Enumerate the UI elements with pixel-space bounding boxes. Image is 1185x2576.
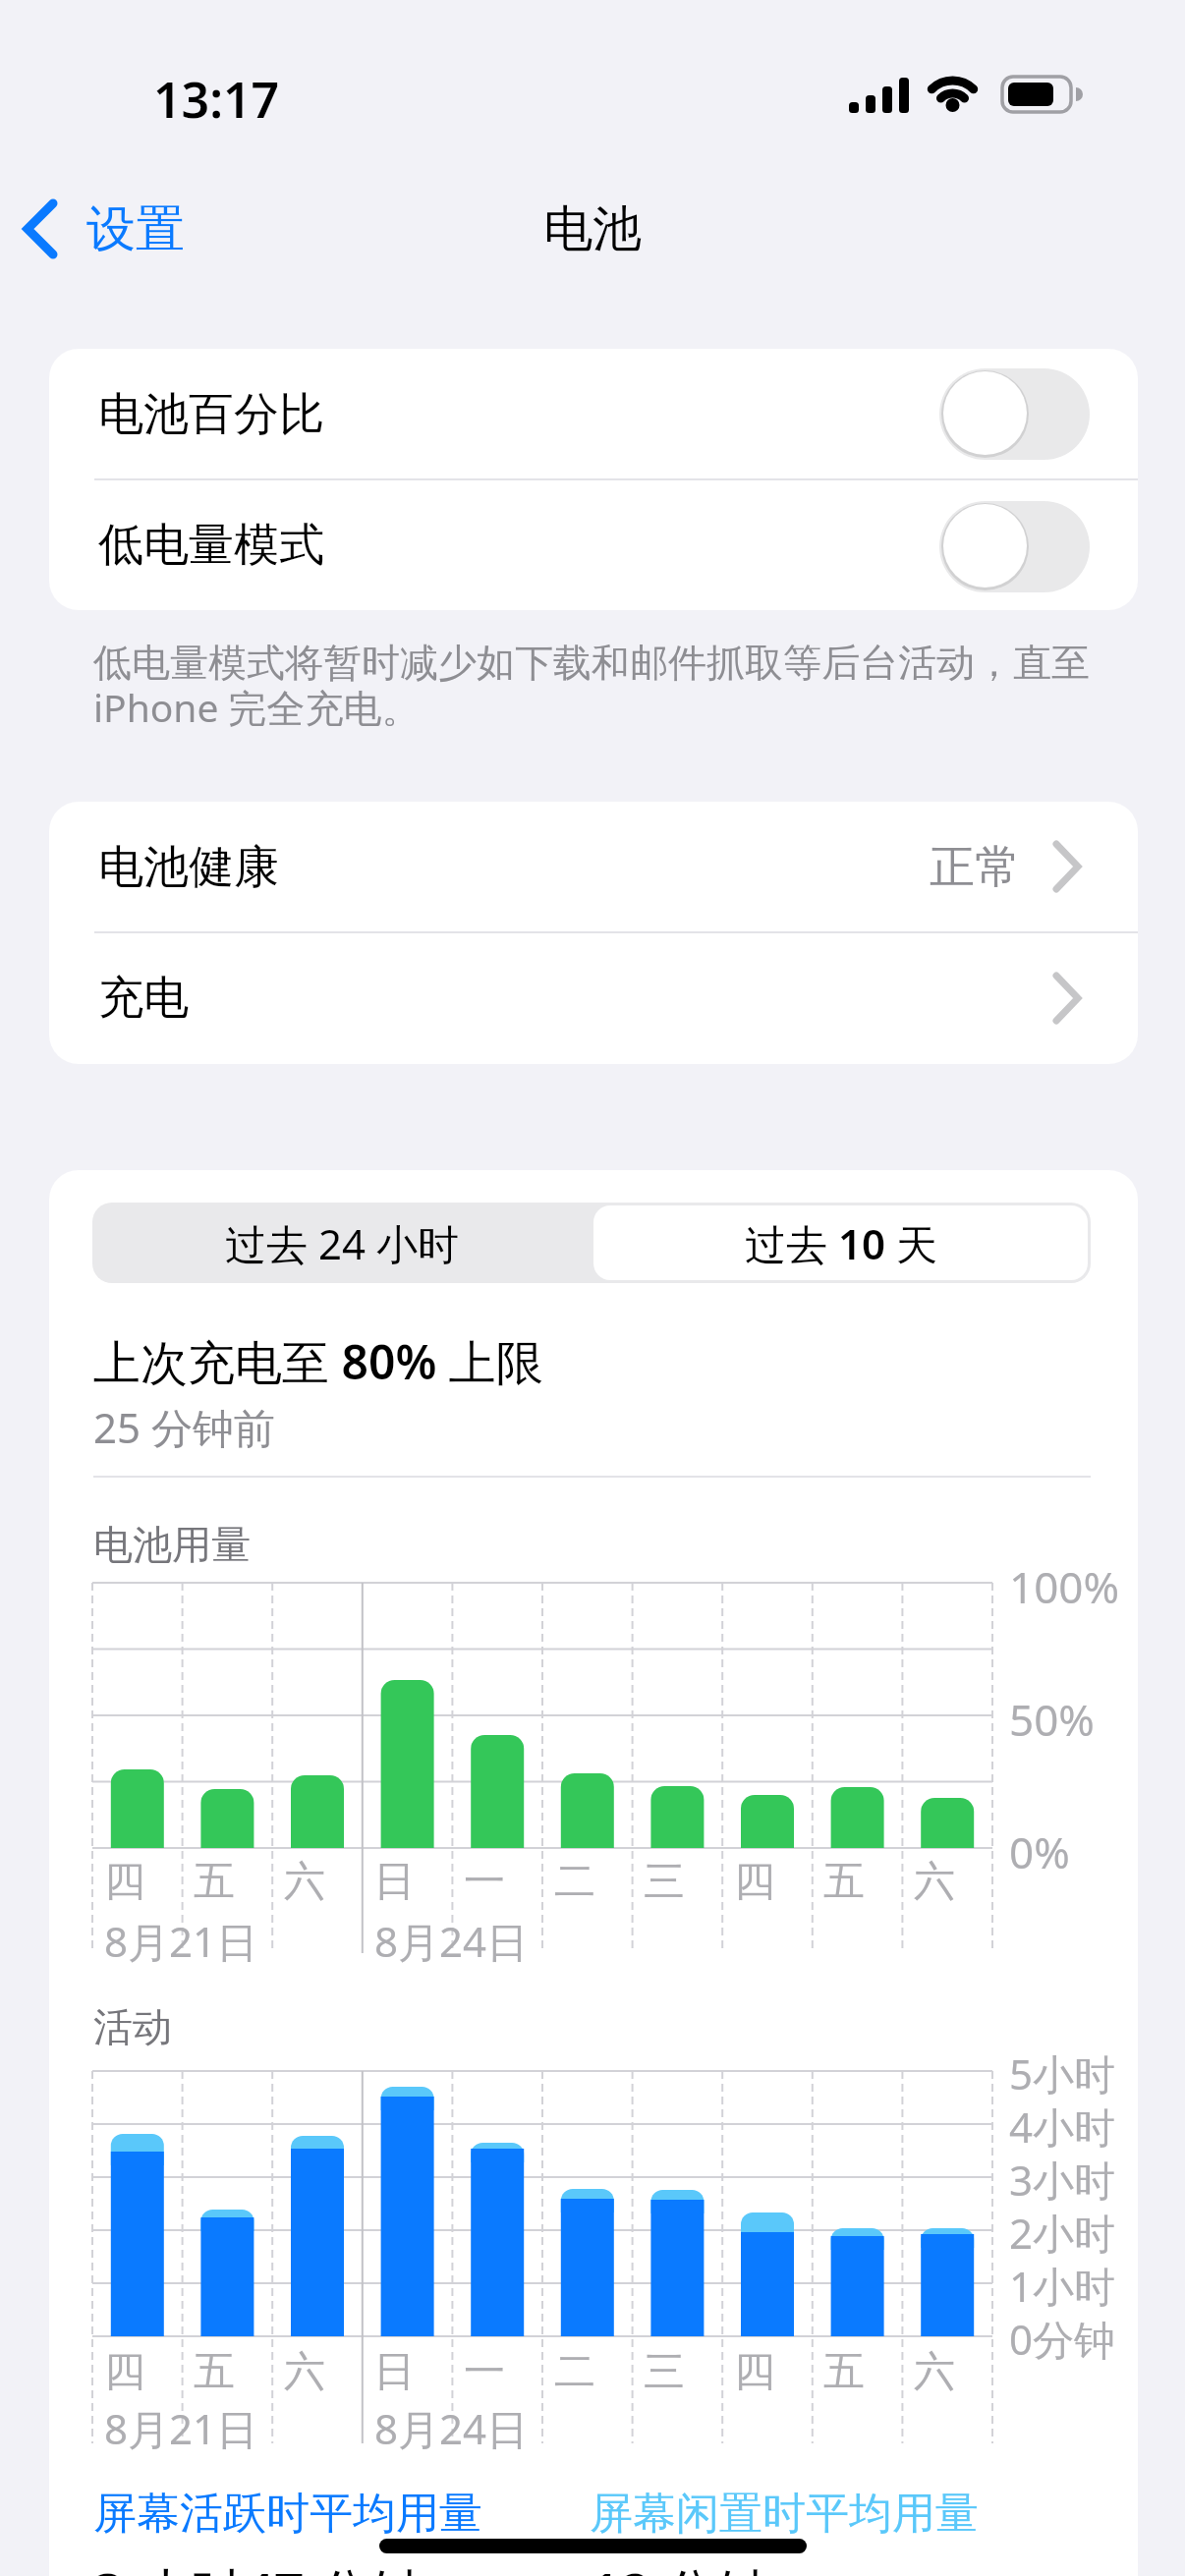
staticText: 五 — [194, 2346, 235, 2397]
staticText: 电池 — [543, 198, 642, 260]
staticText: 电池用量 — [93, 1520, 251, 1569]
staticText: 50% — [1009, 1690, 1095, 1741]
staticText: 0% — [1009, 1822, 1070, 1874]
staticText: 0分钟 — [1009, 2311, 1116, 2362]
staticText: 一 — [464, 1856, 505, 1907]
staticText: 五 — [823, 2346, 865, 2397]
staticText: 8月21日 — [104, 2400, 258, 2451]
button[interactable] — [49, 349, 1138, 479]
staticText: 屏幕闲置时平均用量 — [590, 2487, 979, 2538]
staticText: 低电量模式将暂时减少如下载和邮件抓取等后台活动，直至 iPhone 完全充电。 — [93, 639, 1090, 734]
staticText: 屏幕活跃时平均用量 — [93, 2487, 482, 2538]
staticText: 六 — [914, 1856, 955, 1907]
staticText: 25 分钟前 — [93, 1399, 275, 1450]
staticText: 2小时 — [1009, 2205, 1116, 2256]
staticText: 三 — [644, 2346, 685, 2397]
button[interactable]: 设置 — [10, 192, 197, 270]
staticText: 日 — [373, 2346, 415, 2397]
staticText: 3 小时47 分钟 — [93, 2555, 424, 2576]
staticText: 四 — [734, 1856, 775, 1907]
staticText: 电池健康 — [98, 839, 279, 896]
staticText: 8月21日 — [104, 1913, 258, 1964]
staticText: 六 — [914, 2346, 955, 2397]
staticText: 8月24日 — [374, 2400, 529, 2451]
button[interactable] — [939, 501, 1090, 592]
staticText: 正常 — [930, 839, 1020, 896]
staticText: 上次充电至 80% 上限 — [93, 1329, 543, 1394]
staticText: 一 — [464, 2346, 505, 2397]
staticText: 五 — [194, 1856, 235, 1907]
button[interactable] — [49, 932, 1138, 1064]
staticText: 日 — [373, 1856, 415, 1907]
staticText: 六 — [284, 2346, 325, 2397]
staticText: 二 — [554, 2346, 595, 2397]
staticText: 4小时 — [1009, 2099, 1116, 2150]
button[interactable] — [92, 1203, 592, 1283]
button[interactable] — [49, 802, 1138, 932]
staticText: 过去 24 小时 — [225, 1215, 459, 1271]
staticText: 四 — [104, 2346, 145, 2397]
staticText: 8月24日 — [374, 1913, 529, 1964]
staticText: 低电量模式 — [98, 517, 324, 574]
button[interactable] — [593, 1205, 1088, 1280]
staticText: 电池百分比 — [98, 386, 324, 443]
staticText: 5小时 — [1009, 2045, 1116, 2097]
staticText: 三 — [644, 1856, 685, 1907]
staticText: 活动 — [93, 2002, 172, 2051]
staticText: 充电 — [98, 970, 189, 1027]
staticText: 100% — [1009, 1557, 1120, 1608]
staticText: 1小时 — [1009, 2258, 1116, 2309]
staticText: 过去 10 天 — [745, 1215, 937, 1271]
button[interactable] — [49, 479, 1138, 610]
staticText: 四 — [104, 1856, 145, 1907]
staticText: 二 — [554, 1856, 595, 1907]
staticText: 设置 — [86, 198, 185, 260]
staticText: 五 — [823, 1856, 865, 1907]
staticText: 3小时 — [1009, 2152, 1116, 2203]
staticText: 12 分钟 — [590, 2555, 770, 2576]
staticText: 四 — [734, 2346, 775, 2397]
staticText: 13:17 — [153, 66, 280, 127]
button[interactable] — [939, 368, 1090, 460]
staticText: 六 — [284, 1856, 325, 1907]
